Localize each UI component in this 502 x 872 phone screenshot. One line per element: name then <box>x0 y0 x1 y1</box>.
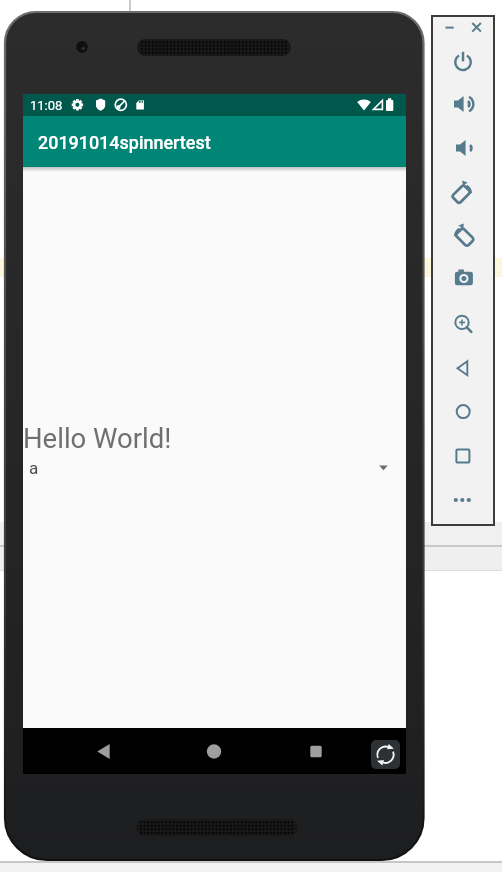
button[interactable] <box>449 221 477 249</box>
button[interactable] <box>195 733 233 771</box>
staticText: a <box>29 458 39 478</box>
button[interactable] <box>297 733 335 771</box>
button[interactable] <box>449 485 477 513</box>
button[interactable] <box>449 353 477 381</box>
button[interactable] <box>468 19 485 36</box>
button[interactable] <box>449 90 477 118</box>
button[interactable] <box>371 740 400 769</box>
button[interactable]: a <box>23 452 406 484</box>
button[interactable] <box>449 309 477 337</box>
button[interactable] <box>449 397 477 425</box>
button[interactable] <box>449 441 477 469</box>
button[interactable] <box>449 265 477 293</box>
button[interactable] <box>85 733 123 771</box>
staticText: 11:08 <box>30 98 63 113</box>
button[interactable] <box>441 19 458 36</box>
button[interactable] <box>449 47 477 75</box>
button[interactable] <box>449 134 477 162</box>
button[interactable] <box>449 178 477 206</box>
staticText: 20191014spinnertest <box>38 132 211 153</box>
staticText: Hello World! <box>23 422 172 454</box>
